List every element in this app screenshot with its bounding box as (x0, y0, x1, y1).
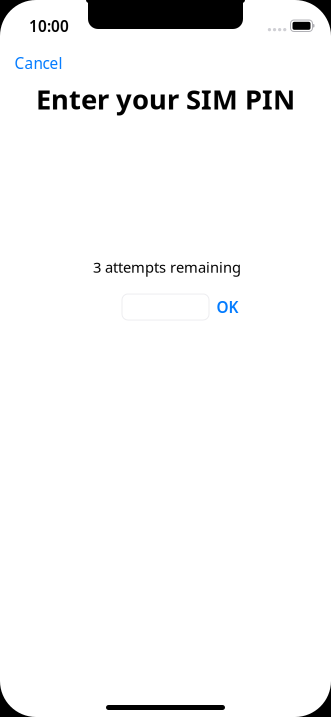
staticText: OK (216, 297, 238, 317)
button[interactable]: Cancel (14, 48, 68, 78)
staticText: 3 attempts remaining (93, 257, 241, 277)
staticText: Enter your SIM PIN (36, 80, 295, 118)
staticText: 10:00 (29, 16, 69, 36)
button[interactable]: OK (213, 294, 241, 320)
staticText: Cancel (14, 53, 62, 73)
